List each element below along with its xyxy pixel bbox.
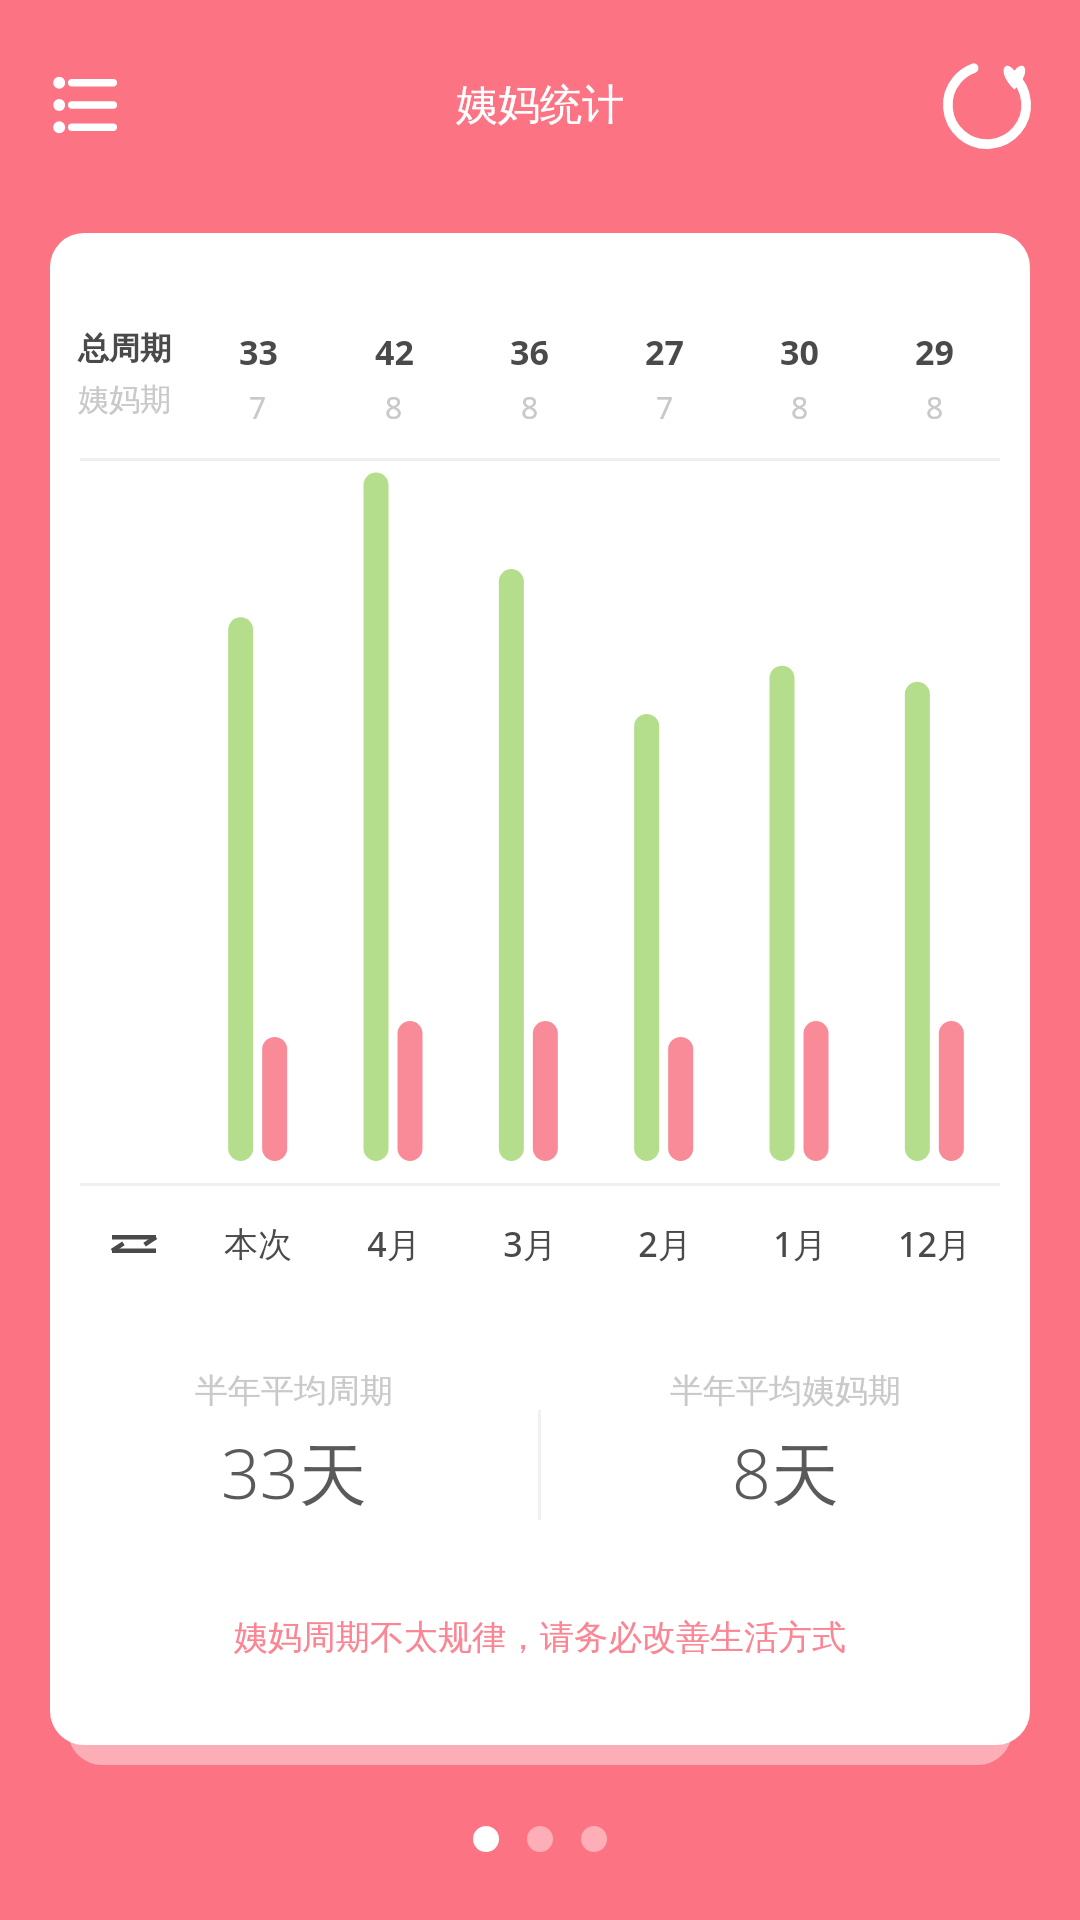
button[interactable]: Switch [78,1214,190,1274]
staticText: 1月 [773,1221,827,1267]
staticText: 30 [780,329,819,375]
staticText: 半年平均姨妈期 [670,1370,901,1412]
staticText: 8 [926,387,944,428]
button[interactable]: Page 3 [581,1826,607,1852]
staticText: 8 [385,387,403,428]
staticText: 8 [791,387,809,428]
staticText: 3月 [503,1221,557,1267]
staticText: 姨妈周期不太规律，请务必改善生活方式 [50,1616,1030,1659]
staticText: 姨妈统计 [456,79,624,132]
button[interactable]: Page 2 [527,1826,553,1852]
button[interactable]: Page 1 [473,1826,499,1852]
button[interactable]: Menu [40,60,130,150]
staticText: 8天 [732,1426,839,1519]
staticText: 8 [521,387,539,428]
staticText: 2月 [638,1221,692,1267]
staticText: 27 [645,329,684,375]
staticText: 姨妈期 [78,380,171,419]
staticText: 总周期 [78,329,171,368]
staticText: 29 [915,329,954,375]
staticText: 33天 [221,1426,367,1519]
staticText: 半年平均周期 [195,1370,393,1412]
staticText: 12月 [898,1221,971,1267]
staticText: 4月 [367,1221,421,1267]
staticText: 7 [656,387,674,428]
staticText: 本次 [224,1223,292,1266]
staticText: 33 [239,329,278,375]
staticText: 42 [375,329,414,375]
staticText: 7 [249,387,267,428]
button[interactable]: Cycle [932,50,1042,160]
staticText: 36 [510,329,549,375]
